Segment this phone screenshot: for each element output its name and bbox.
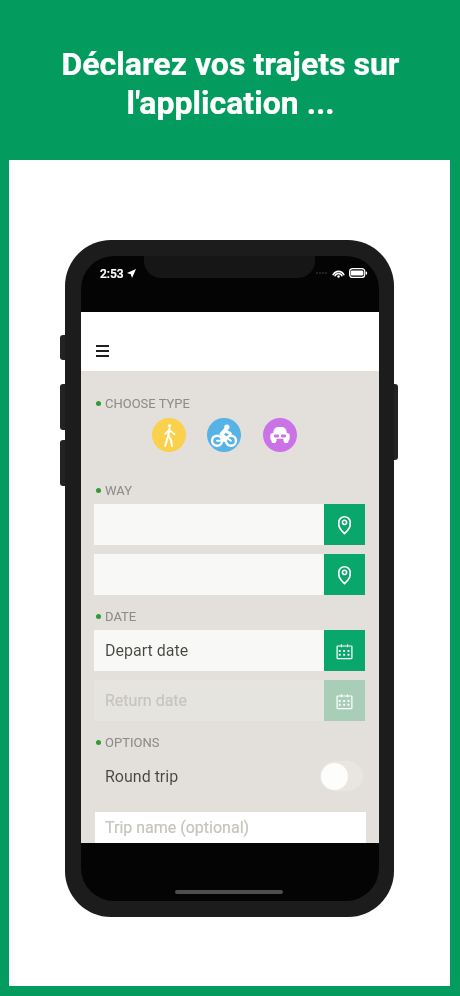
staticText: CHOOSE TYPE (105, 396, 190, 410)
staticText: Trip name (optional) (105, 818, 250, 837)
button[interactable]: Pick return date (324, 680, 365, 721)
staticText: Return date (105, 691, 188, 710)
staticText: OPTIONS (105, 735, 160, 749)
button[interactable]: Walking (152, 418, 186, 452)
staticText: 2:53 (100, 267, 124, 281)
button[interactable]: Pick depart date (324, 630, 365, 671)
other: Round trip toggle (320, 761, 363, 791)
staticText: Déclarez vos trajets sur l'application .… (61, 45, 400, 122)
button[interactable]: Depart date (94, 630, 324, 671)
button[interactable]: Car (263, 418, 297, 452)
button[interactable]: Trip name (optional) (95, 812, 366, 843)
button[interactable]: Pick arrival place (324, 554, 365, 595)
staticText: Depart date (105, 641, 189, 660)
button[interactable]: Pick departure place (324, 504, 365, 545)
staticText: Round trip (105, 767, 179, 786)
button[interactable]: Round trip (105, 759, 363, 793)
button[interactable]: Menu (92, 341, 112, 361)
staticText: DATE (105, 609, 137, 623)
staticText: WAY (105, 483, 132, 497)
button[interactable]: Return date (94, 680, 324, 721)
button[interactable]: Cycling (207, 418, 241, 452)
